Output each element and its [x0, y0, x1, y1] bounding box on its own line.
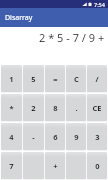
button[interactable]: 7	[1, 152, 22, 179]
button[interactable]: /	[87, 65, 107, 92]
button[interactable]: .	[66, 94, 86, 121]
staticText: /	[95, 74, 99, 84]
button[interactable]: 3	[87, 123, 107, 150]
staticText: +	[53, 161, 58, 171]
button[interactable]: 0	[87, 152, 107, 179]
staticText: C	[74, 74, 79, 84]
staticText: 4	[9, 132, 14, 142]
staticText: 3	[95, 132, 100, 142]
staticText: 8	[53, 103, 58, 113]
staticText: .	[75, 103, 78, 113]
staticText: CE	[92, 103, 102, 113]
staticText: 7	[9, 161, 14, 171]
staticText: 0	[95, 161, 100, 171]
button[interactable]: 8	[45, 94, 65, 121]
button[interactable]: 1	[1, 65, 22, 92]
button[interactable]: =	[45, 65, 65, 92]
button[interactable]: C	[66, 65, 86, 92]
button[interactable]: 4	[1, 123, 22, 150]
staticText: 9	[74, 132, 79, 142]
staticText: -	[32, 132, 35, 142]
staticText: =	[53, 74, 58, 84]
button[interactable]: 9	[66, 123, 86, 150]
staticText: 7:54	[94, 1, 105, 8]
staticText: 6	[53, 132, 58, 142]
button[interactable]: -	[23, 123, 44, 150]
button[interactable]: *	[1, 94, 22, 121]
staticText: *	[9, 103, 14, 113]
staticText: 2 * 5 - 7 / 9 +	[39, 30, 105, 45]
button[interactable]: 6	[45, 123, 65, 150]
staticText: 1	[9, 74, 14, 84]
staticText: 5	[31, 74, 36, 84]
button[interactable]: +	[45, 152, 65, 179]
button[interactable]: 2	[23, 94, 44, 121]
button[interactable]: 5	[23, 65, 44, 92]
staticText: 2	[31, 103, 36, 113]
button[interactable]: CE	[87, 94, 107, 121]
staticText: Disarray	[5, 13, 33, 23]
